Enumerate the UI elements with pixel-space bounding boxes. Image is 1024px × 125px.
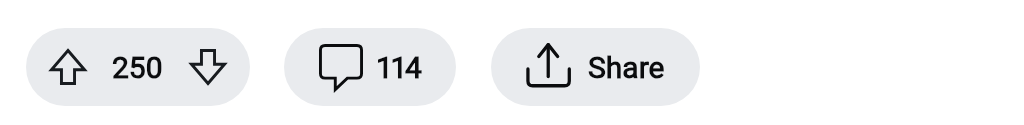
staticText: Share bbox=[588, 50, 665, 85]
staticText: 114 bbox=[376, 50, 420, 85]
button[interactable]: 114 bbox=[284, 28, 456, 106]
other: Downvote bbox=[190, 49, 226, 85]
staticText: 250 bbox=[112, 50, 163, 85]
button[interactable]: Upvote bbox=[26, 28, 250, 106]
other: Upvote bbox=[50, 49, 86, 85]
button[interactable]: Share bbox=[491, 28, 700, 106]
